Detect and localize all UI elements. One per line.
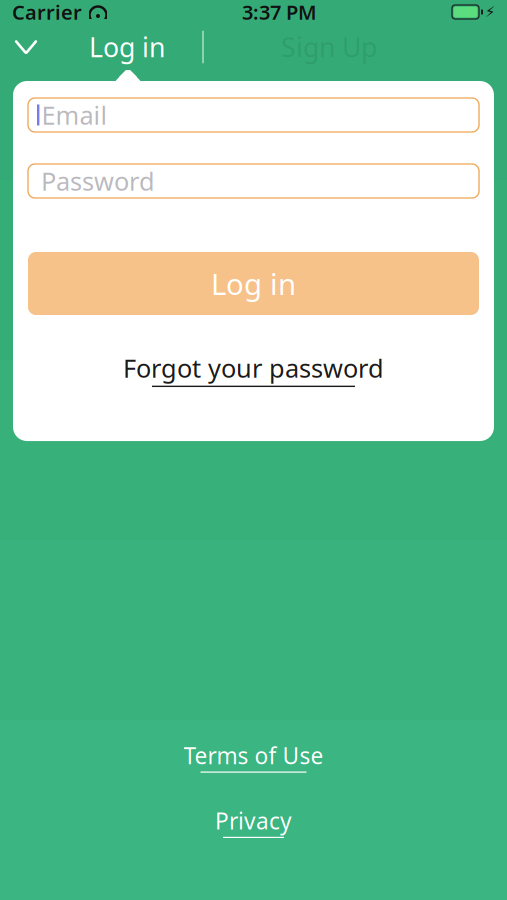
staticText: ⚡︎	[485, 4, 495, 20]
staticText: Sign Up	[281, 29, 377, 65]
staticText: Log in	[89, 29, 165, 65]
staticText: 3:37 PM	[242, 0, 317, 25]
staticText: Forgot your password	[123, 351, 384, 385]
button[interactable]: Password	[13, 164, 494, 198]
button[interactable]: Email	[13, 98, 494, 132]
button[interactable]: Log in	[52, 24, 202, 70]
button[interactable]: Terms of Use	[183, 740, 323, 773]
staticText: Privacy	[215, 806, 292, 836]
staticText: Carrier	[12, 0, 82, 25]
staticText: Log in	[211, 264, 296, 303]
button[interactable]: Log in	[28, 252, 479, 315]
staticText: Terms of Use	[183, 740, 323, 770]
staticText: Password	[41, 164, 155, 198]
button[interactable]: Forgot your password	[123, 351, 384, 387]
staticText: Email	[41, 98, 107, 132]
button[interactable]: Collapse	[0, 24, 52, 70]
button[interactable]: Privacy	[215, 806, 292, 838]
